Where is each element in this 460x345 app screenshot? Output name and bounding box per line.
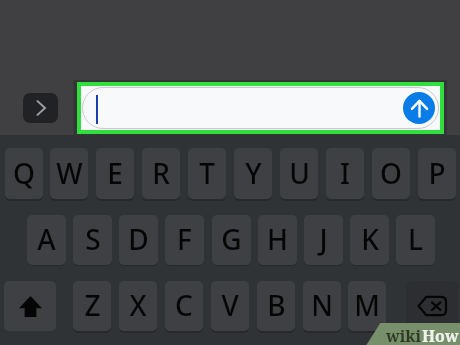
staticText: C (175, 286, 193, 324)
button[interactable]: W (50, 148, 88, 199)
staticText: M (354, 286, 380, 324)
staticText: O (380, 154, 402, 192)
staticText: Y (245, 154, 262, 192)
staticText: F (177, 220, 192, 258)
button[interactable]: K (350, 215, 389, 265)
button[interactable]: R (142, 148, 180, 199)
button[interactable]: B (257, 281, 295, 331)
staticText: E (107, 154, 123, 192)
staticText: N (311, 286, 333, 324)
staticText: J (319, 220, 328, 258)
staticText: P (428, 154, 446, 192)
button[interactable]: Send (403, 92, 435, 124)
button[interactable]: I (326, 148, 364, 199)
button[interactable]: Expand keyboard (23, 93, 58, 123)
button[interactable]: S (73, 215, 112, 265)
staticText: wiki (386, 325, 422, 345)
button[interactable]: A (27, 215, 66, 265)
staticText: L (408, 220, 423, 258)
staticText: U (289, 154, 310, 192)
button[interactable]: M (348, 281, 386, 331)
button[interactable]: U (280, 148, 318, 199)
staticText: H (267, 220, 288, 258)
button[interactable]: D (119, 215, 158, 265)
button[interactable]: Z (73, 281, 111, 331)
staticText: Z (84, 286, 101, 324)
staticText: A (37, 220, 56, 258)
staticText: S (85, 220, 101, 258)
button[interactable]: Backspace (406, 281, 458, 331)
button[interactable]: Y (234, 148, 272, 199)
button[interactable]: J (304, 215, 343, 265)
button[interactable]: C (165, 281, 203, 331)
staticText: G (221, 220, 242, 258)
button[interactable]: Shift (4, 281, 56, 331)
staticText: R (152, 154, 170, 192)
staticText: X (129, 286, 147, 324)
staticText: B (267, 286, 286, 324)
staticText: How (422, 325, 459, 345)
button[interactable]: L (396, 215, 435, 265)
button[interactable]: E (96, 148, 134, 199)
button[interactable]: P (418, 148, 456, 199)
staticText: V (221, 286, 239, 324)
button[interactable]: H (258, 215, 297, 265)
staticText: Q (13, 154, 35, 192)
staticText: W (56, 154, 83, 192)
button[interactable]: V (211, 281, 249, 331)
staticText: K (361, 220, 379, 258)
button[interactable]: O (372, 148, 410, 199)
staticText: T (199, 154, 215, 192)
button[interactable]: X (119, 281, 157, 331)
staticText: I (340, 154, 350, 192)
button[interactable]: F (165, 215, 204, 265)
button[interactable]: N (303, 281, 341, 331)
button[interactable]: Send (81, 86, 440, 130)
button[interactable]: G (212, 215, 251, 265)
button[interactable]: T (188, 148, 226, 199)
staticText: D (128, 220, 149, 258)
button[interactable]: Q (5, 148, 43, 199)
